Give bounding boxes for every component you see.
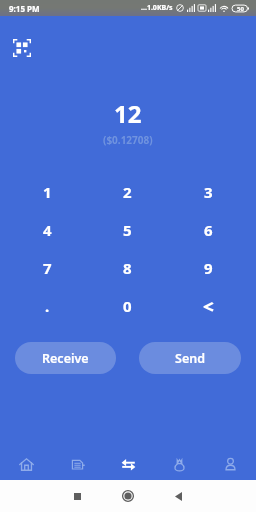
- button[interactable]: 5: [87, 211, 168, 249]
- button[interactable]: Home: [116, 484, 140, 508]
- staticText: 12: [114, 97, 142, 130]
- button[interactable]: Wallet: [52, 448, 103, 480]
- button[interactable]: Receive: [15, 342, 116, 374]
- button[interactable]: 3: [168, 173, 249, 211]
- staticText: Receive: [42, 350, 89, 367]
- button[interactable]: Backspace: [168, 287, 249, 325]
- staticText: 0: [123, 296, 132, 316]
- staticText: 5: [123, 220, 132, 240]
- staticText: ...1.0KB/s: [141, 3, 173, 13]
- staticText: 50: [237, 5, 244, 13]
- button[interactable]: Back: [166, 484, 190, 508]
- button[interactable]: Scan QR code: [8, 34, 36, 62]
- button[interactable]: 4: [7, 211, 87, 249]
- button[interactable]: Profile: [205, 448, 256, 480]
- button[interactable]: Decimal point: [7, 287, 87, 325]
- staticText: 3: [204, 182, 213, 202]
- button[interactable]: 0: [87, 287, 168, 325]
- staticText: 4: [43, 220, 52, 240]
- staticText: 8: [123, 258, 132, 278]
- button[interactable]: 9: [168, 249, 249, 287]
- staticText: ($0.12708): [103, 133, 153, 147]
- staticText: 9:15 PM: [9, 3, 40, 14]
- button[interactable]: Send: [139, 342, 241, 374]
- button[interactable]: Recents: [65, 484, 89, 508]
- button[interactable]: 8: [87, 249, 168, 287]
- button[interactable]: Transfer: [103, 448, 154, 480]
- button[interactable]: Home: [0, 448, 52, 480]
- button[interactable]: 7: [7, 249, 87, 287]
- staticText: 6: [204, 220, 213, 240]
- button[interactable]: Savings: [154, 448, 205, 480]
- button[interactable]: 1: [7, 173, 87, 211]
- button[interactable]: 6: [168, 211, 249, 249]
- staticText: 7: [43, 258, 52, 278]
- staticText: Send: [175, 350, 205, 367]
- staticText: .: [45, 296, 50, 316]
- staticText: 1: [43, 182, 52, 202]
- button[interactable]: 2: [87, 173, 168, 211]
- staticText: 9: [204, 258, 213, 278]
- staticText: 2: [123, 182, 132, 202]
